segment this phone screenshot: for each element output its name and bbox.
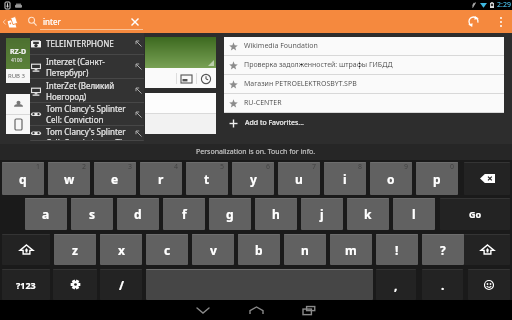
button[interactable]: c [146, 234, 188, 265]
button[interactable]: b [238, 234, 280, 265]
button[interactable]: z [54, 234, 96, 265]
staticText: 5 [220, 162, 225, 172]
staticText: RZ-D [10, 47, 27, 57]
button[interactable]: g [209, 198, 251, 230]
button[interactable]: Clear query [127, 10, 143, 33]
staticText: ! [395, 242, 399, 258]
button[interactable]: Recent apps [288, 300, 330, 320]
button[interactable]: Emoji [468, 269, 510, 300]
other: Keyboard settings [70, 279, 81, 290]
staticText: 0 [450, 162, 455, 172]
staticText: g [226, 206, 234, 222]
button[interactable]: Home [235, 300, 277, 320]
staticText: TELEINTERPHONE [46, 38, 114, 49]
button[interactable]: / [100, 269, 142, 300]
staticText: 4 [174, 162, 179, 172]
staticText: 1 [36, 162, 41, 172]
button[interactable]: Interzet (Санкт- [30, 55, 144, 79]
button[interactable]: Shift [2, 234, 50, 265]
staticText: Tom Clancy's Splinter [46, 126, 126, 137]
button[interactable]: Tom Clancy's Splinter [30, 126, 144, 141]
button[interactable]: Магазин PETROELEKTROSBYT.SPB [224, 75, 504, 93]
staticText: 2:29 [497, 0, 511, 10]
staticText: j [320, 206, 324, 222]
staticText: InterZet (Великий [46, 80, 115, 91]
button[interactable]: InterZet (Великий [30, 79, 144, 103]
button[interactable]: k [347, 198, 389, 230]
button[interactable]: . [422, 269, 463, 300]
staticText: o [387, 171, 395, 187]
button[interactable]: Refresh [462, 10, 485, 33]
staticText: inter [43, 16, 61, 27]
button[interactable]: s [71, 198, 113, 230]
other: Shift [481, 245, 494, 254]
button[interactable]: q [2, 162, 44, 195]
staticText: , [394, 277, 398, 293]
button[interactable]: e [94, 162, 136, 195]
staticText: Петербург) [46, 67, 89, 78]
button[interactable]: Wikimedia Foundation [224, 37, 504, 55]
button[interactable]: p [416, 162, 458, 195]
staticText: Wikimedia Foundation [244, 41, 318, 51]
button[interactable]: Проверка задолженностей: штрафы ГИБДД [224, 56, 504, 74]
button[interactable]: Add to Favorites... [220, 113, 500, 133]
button[interactable]: TELEINTERPHONE [30, 33, 144, 55]
button[interactable]: ! [376, 234, 418, 265]
button[interactable]: v [192, 234, 234, 265]
staticText: Cell: Conviction [46, 114, 104, 125]
staticText: Tom Clancy's Splinter [46, 103, 126, 114]
staticText: w [64, 171, 75, 187]
button[interactable]: Go [440, 198, 510, 230]
button[interactable]: Shift [464, 234, 510, 265]
staticText: a [42, 206, 50, 222]
button[interactable]: i [324, 162, 366, 195]
button[interactable]: d [117, 198, 159, 230]
button[interactable]: r [140, 162, 182, 195]
staticText: d [134, 206, 142, 222]
staticText: f [182, 206, 187, 222]
staticText: ?123 [16, 279, 36, 291]
staticText: p [433, 171, 441, 187]
button[interactable]: o [370, 162, 412, 195]
button[interactable]: h [255, 198, 297, 230]
button[interactable] [146, 269, 373, 300]
button[interactable]: l [393, 198, 435, 230]
button[interactable]: y [232, 162, 274, 195]
button[interactable]: RU-CENTER [224, 94, 504, 112]
staticText: RU-CENTER [244, 98, 282, 108]
staticText: i [343, 171, 347, 187]
staticText: / [119, 277, 124, 293]
button[interactable]: ? [422, 234, 464, 265]
button[interactable]: t [186, 162, 228, 195]
staticText: Personalization is on. Touch for info. [196, 147, 316, 157]
staticText: Новгород) [46, 91, 87, 102]
button[interactable]: u [278, 162, 320, 195]
button[interactable]: Backspace [464, 162, 510, 195]
button[interactable]: ?123 [2, 269, 50, 300]
staticText: m [345, 242, 357, 258]
button[interactable]: n [284, 234, 326, 265]
staticText: v [210, 242, 217, 258]
button[interactable]: a [25, 198, 67, 230]
button[interactable]: Back [182, 300, 224, 320]
button[interactable]: More options [492, 10, 510, 33]
button[interactable]: m [330, 234, 372, 265]
button[interactable]: , [376, 269, 416, 300]
staticText: x [118, 242, 125, 258]
button[interactable]: f [163, 198, 205, 230]
staticText: Go [469, 208, 482, 220]
other: Shift [20, 245, 33, 254]
button[interactable]: w [48, 162, 90, 195]
button[interactable]: Keyboard settings [53, 269, 97, 300]
staticText: . [441, 277, 445, 293]
button[interactable]: Tom Clancy's Splinter [30, 103, 144, 126]
button[interactable]: App icon [6, 10, 19, 33]
button[interactable]: x [100, 234, 142, 265]
other: Backspace [480, 174, 495, 183]
button[interactable]: Navigate up [1, 10, 8, 33]
staticText: e [111, 171, 119, 187]
staticText: 8 [358, 162, 363, 172]
other: Emoji [484, 280, 494, 290]
staticText: Interzet (Санкт- [46, 56, 105, 67]
button[interactable]: j [301, 198, 343, 230]
